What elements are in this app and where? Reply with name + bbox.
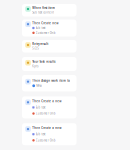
- staticText: Then Create a new: [32, 126, 61, 130]
- staticText: Then Create new: [32, 21, 58, 25]
- staticText: Your Task results: [32, 60, 55, 63]
- staticText: Sub text: [36, 26, 46, 30]
- staticText: Retry result: [32, 42, 48, 46]
- button[interactable]: Then Create a new: [22, 96, 76, 118]
- staticText: Customer Onb: [36, 31, 56, 35]
- staticText: Then Assign work item to: [32, 79, 70, 82]
- staticText: Then Create a new: [32, 99, 61, 103]
- button[interactable]: Your Task results: [22, 57, 76, 71]
- button[interactable]: When first item: [22, 4, 76, 16]
- staticText: 6pts: [32, 64, 38, 68]
- staticText: Customer Onb: [36, 112, 56, 115]
- staticText: Sub text: [36, 106, 46, 109]
- staticText: 5/25: [32, 47, 39, 50]
- button[interactable]: Then Create new: [22, 19, 76, 36]
- button[interactable]: Then Assign work item to: [22, 75, 76, 91]
- button[interactable]: Retry result: [22, 40, 76, 52]
- staticText: Mika: [36, 84, 41, 87]
- staticText: Customer Onb: [36, 139, 56, 142]
- staticText: Sub text: [36, 132, 46, 136]
- button[interactable]: Then Create a new: [22, 123, 76, 145]
- staticText: Sub text content: [32, 11, 54, 14]
- staticText: When first item: [32, 6, 55, 10]
